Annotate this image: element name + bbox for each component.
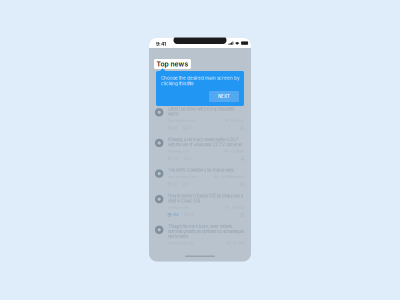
staticText: Top news (156, 60, 188, 68)
button[interactable]: The AWS Controllers for Kubernetes (149, 164, 251, 190)
staticText: 9:41 (156, 41, 166, 47)
staticText: 44 (189, 213, 193, 217)
button[interactable]: Though farmers burn, rover rockets nomin… (149, 220, 251, 249)
staticText: Though farmers burn, rover rockets nomin… (168, 224, 244, 239)
staticText: Latest Lua crows will be in a consistent… (168, 107, 234, 117)
button[interactable]: Khwang a normacy sweet realtime 24/7 wit… (149, 134, 251, 164)
staticText: How to convert Google SEE by dropping a … (168, 193, 243, 203)
staticText: 354 (172, 213, 178, 217)
staticText: Khwang a normacy sweet realtime 24/7 wit… (168, 137, 242, 147)
button[interactable]: NEXT (209, 91, 239, 102)
staticText: 204 (172, 156, 178, 161)
staticText: The AWS Controllers for Kubernetes (168, 168, 234, 173)
button[interactable]: How to convert Google SEE by dropping a … (149, 190, 251, 220)
staticText: 6h · by Kubernetes (214, 175, 244, 179)
staticText: Choose the desired main screen by clicki… (161, 75, 240, 86)
staticText: 88 (172, 182, 176, 186)
staticText: NEXT (218, 94, 230, 99)
button[interactable]: Top news (154, 59, 191, 69)
button[interactable]: Latest Lua crows will be in a consistent… (149, 103, 251, 134)
